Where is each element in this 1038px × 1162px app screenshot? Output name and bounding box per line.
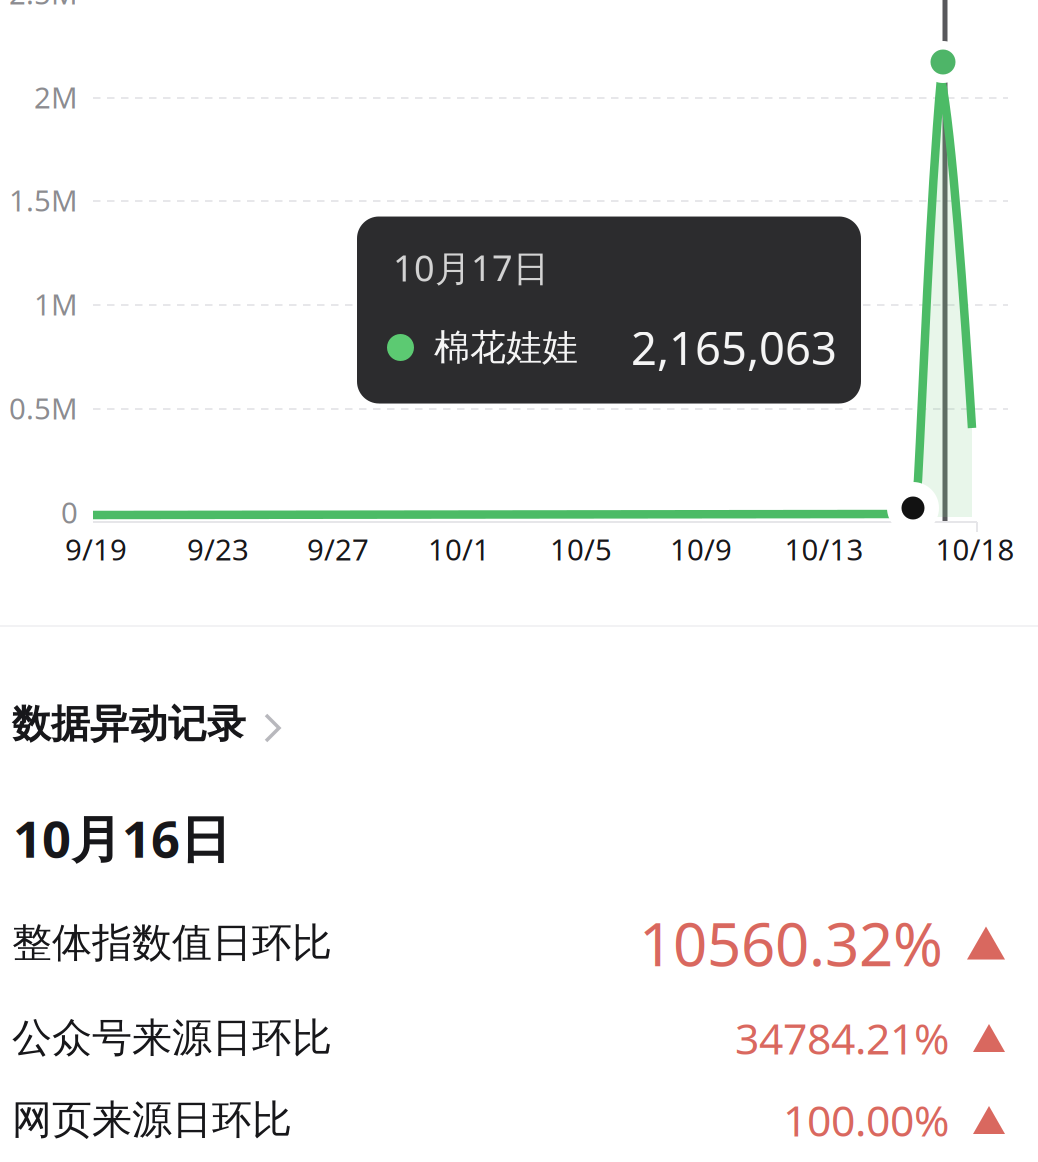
staticText: 1.5M <box>9 180 78 219</box>
staticText: 0.5M <box>9 388 78 427</box>
staticText: 100.00% <box>783 1092 949 1148</box>
staticText: 0 <box>61 492 78 531</box>
staticText: 9/27 <box>307 529 369 568</box>
staticText: 2.5M <box>9 0 78 12</box>
staticText: 34784.21% <box>735 1010 949 1066</box>
staticText: 10/9 <box>670 529 732 568</box>
staticText: 10/18 <box>935 529 1014 568</box>
button[interactable]: 整体指数值日环比 <box>0 904 1038 982</box>
staticText: 棉花娃娃 <box>434 325 578 370</box>
staticText: 1M <box>34 284 78 323</box>
staticText: 9/19 <box>65 529 127 568</box>
staticText: 公众号来源日环比 <box>12 1013 332 1062</box>
staticText: 2,165,063 <box>631 317 837 378</box>
staticText: 10560.32% <box>639 903 943 983</box>
staticText: 10/13 <box>784 529 863 568</box>
staticText: 10月17日 <box>393 244 549 291</box>
staticText: 10/5 <box>550 529 612 568</box>
staticText: 数据异动记录 <box>12 700 246 748</box>
staticText: 9/23 <box>187 529 249 568</box>
staticText: 10月16日 <box>13 804 231 872</box>
button[interactable]: 数据异动记录 <box>0 688 1038 760</box>
staticText: 网页来源日环比 <box>12 1095 292 1144</box>
staticText: 2M <box>34 77 78 116</box>
staticText: 整体指数值日环比 <box>12 918 332 967</box>
staticText: 10/1 <box>428 529 490 568</box>
button[interactable]: 网页来源日环比 <box>0 1081 1038 1159</box>
button[interactable]: 公众号来源日环比 <box>0 999 1038 1077</box>
